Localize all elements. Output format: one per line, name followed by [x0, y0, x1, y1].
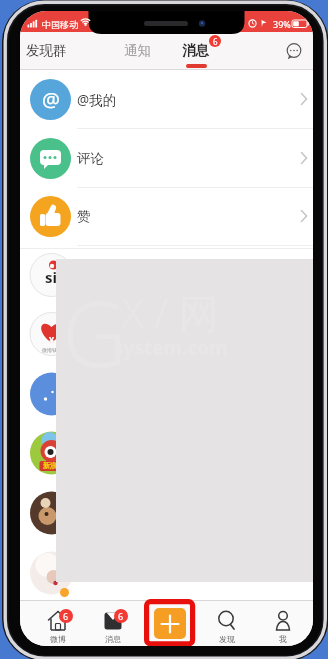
- staticText: 6: [118, 610, 124, 622]
- button[interactable]: [285, 43, 303, 61]
- button[interactable]: 消息: [89, 601, 137, 646]
- staticText: @我的: [77, 91, 117, 109]
- button[interactable]: [154, 608, 186, 639]
- staticText: 消息: [105, 634, 121, 644]
- button[interactable]: 消息: [175, 39, 215, 61]
- staticText: 39%: [273, 18, 291, 30]
- staticText: 微博钱包: [42, 347, 62, 353]
- staticText: 发现: [219, 634, 235, 644]
- button[interactable]: 微博: [34, 601, 82, 646]
- button[interactable]: 我: [259, 601, 307, 646]
- staticText: 6: [213, 36, 218, 47]
- button[interactable]: 赞: [20, 187, 313, 246]
- staticText: 中国移动: [42, 19, 78, 30]
- staticText: 通知: [124, 42, 151, 59]
- staticText: 微博: [50, 634, 66, 644]
- button[interactable]: 评论: [20, 129, 313, 188]
- staticText: 发现群: [26, 42, 67, 59]
- staticText: 新浪: [43, 461, 57, 470]
- staticText: ¥: [49, 333, 55, 345]
- button[interactable]: @: [20, 70, 313, 129]
- staticText: 我: [279, 634, 287, 644]
- staticText: @: [42, 86, 60, 113]
- button[interactable]: 发现群: [20, 39, 72, 61]
- staticText: 赞: [77, 208, 91, 225]
- staticText: 消息: [182, 42, 209, 59]
- staticText: 评论: [77, 150, 104, 167]
- staticText: 6: [63, 610, 69, 622]
- button[interactable]: 发现: [203, 601, 251, 646]
- button[interactable]: 通知: [117, 39, 157, 61]
- staticText: si: [45, 267, 58, 285]
